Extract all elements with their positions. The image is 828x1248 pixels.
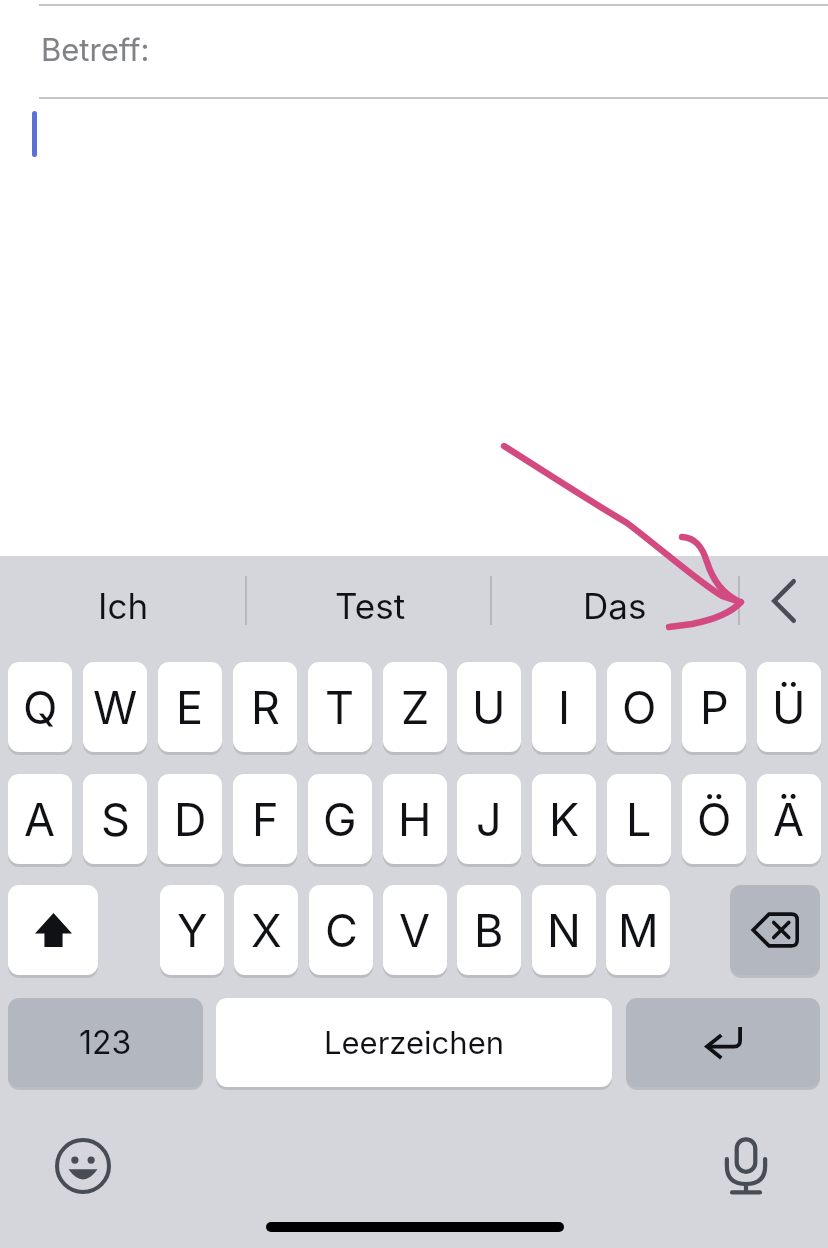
- button[interactable]: M: [606, 885, 670, 975]
- button[interactable]: S: [83, 774, 147, 864]
- button[interactable]: T: [308, 662, 372, 752]
- staticText: T: [325, 680, 355, 734]
- button[interactable]: Enter: [626, 998, 820, 1087]
- staticText: B: [474, 903, 504, 957]
- staticText: Test: [335, 585, 406, 627]
- staticText: A: [24, 792, 56, 846]
- button[interactable]: Previous suggestions: [740, 556, 828, 646]
- button[interactable]: Z: [383, 662, 447, 752]
- staticText: Ö: [697, 792, 732, 846]
- button[interactable]: H: [383, 774, 447, 864]
- staticText: D: [174, 792, 207, 846]
- button[interactable]: W: [83, 662, 147, 752]
- staticText: Ä: [773, 792, 805, 846]
- staticText: K: [549, 792, 580, 846]
- button[interactable]: G: [308, 774, 372, 864]
- staticText: S: [101, 792, 130, 846]
- button[interactable]: Y: [160, 885, 224, 975]
- button[interactable]: Das: [505, 556, 725, 656]
- button[interactable]: O: [607, 662, 671, 752]
- button[interactable]: E: [158, 662, 222, 752]
- button[interactable]: Ü: [757, 662, 821, 752]
- staticText: F: [252, 792, 279, 846]
- staticText: W: [93, 680, 138, 734]
- staticText: I: [558, 680, 571, 734]
- staticText: Q: [23, 680, 58, 734]
- button[interactable]: F: [233, 774, 297, 864]
- staticText: J: [476, 792, 502, 846]
- staticText: O: [622, 680, 657, 734]
- staticText: C: [325, 903, 358, 957]
- staticText: Ü: [772, 680, 806, 734]
- staticText: Y: [177, 903, 208, 957]
- staticText: H: [398, 792, 432, 846]
- staticText: M: [618, 903, 659, 957]
- button[interactable]: B: [457, 885, 521, 975]
- button[interactable]: Voice input: [706, 1126, 786, 1206]
- button[interactable]: V: [383, 885, 447, 975]
- staticText: P: [700, 680, 729, 734]
- button[interactable]: N: [532, 885, 596, 975]
- staticText: X: [251, 903, 282, 957]
- button[interactable]: P: [682, 662, 746, 752]
- button[interactable]: A: [8, 774, 72, 864]
- button[interactable]: Ä: [757, 774, 821, 864]
- staticText: R: [251, 680, 280, 734]
- button[interactable]: I: [532, 662, 596, 752]
- staticText: V: [399, 903, 431, 957]
- staticText: Z: [401, 680, 430, 734]
- button[interactable]: Q: [8, 662, 72, 752]
- button[interactable]: Leerzeichen: [216, 998, 612, 1087]
- button[interactable]: Test: [260, 556, 480, 656]
- button[interactable]: L: [607, 774, 671, 864]
- button[interactable]: Backspace: [730, 885, 820, 975]
- button[interactable]: Ich: [13, 556, 233, 656]
- staticText: N: [547, 903, 581, 957]
- staticText: Ich: [98, 585, 149, 627]
- button[interactable]: 123: [8, 998, 203, 1087]
- staticText: Das: [583, 585, 647, 627]
- button[interactable]: K: [532, 774, 596, 864]
- button[interactable]: Emoji: [43, 1126, 123, 1206]
- staticText: Betreff:: [41, 31, 150, 69]
- staticText: Leerzeichen: [324, 1024, 505, 1062]
- button[interactable]: R: [233, 662, 297, 752]
- staticText: 123: [79, 1023, 132, 1062]
- staticText: E: [176, 680, 204, 734]
- button[interactable]: D: [158, 774, 222, 864]
- button[interactable]: X: [234, 885, 298, 975]
- button[interactable]: J: [457, 774, 521, 864]
- staticText: L: [626, 792, 652, 846]
- staticText: G: [323, 792, 357, 846]
- button[interactable]: U: [457, 662, 521, 752]
- button[interactable]: C: [309, 885, 373, 975]
- staticText: U: [472, 680, 506, 734]
- button[interactable]: Shift: [8, 885, 98, 975]
- button[interactable]: Ö: [682, 774, 746, 864]
